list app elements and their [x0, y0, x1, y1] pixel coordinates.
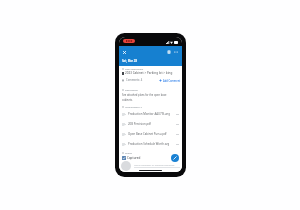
button[interactable]: More options [172, 48, 180, 56]
staticText: Add Comment [163, 79, 181, 82]
button[interactable]: Account [165, 48, 173, 56]
staticText: 2023 Cabinet > Parking lot > bing [125, 71, 173, 75]
button[interactable]: Captured [122, 156, 182, 160]
staticText: Add a comment or mention someone [134, 164, 175, 167]
staticText: Status [125, 151, 133, 154]
button[interactable]: Close [120, 48, 128, 56]
button[interactable]: Add a comment or mention someone [121, 161, 180, 171]
staticText: Description [125, 88, 138, 91]
button[interactable]: Production Monitor AAU79Lung [122, 109, 179, 119]
button[interactable]: Comments: 4 [122, 78, 181, 82]
staticText: Production Schedule Worth.svg [128, 142, 170, 146]
button[interactable]: Production Schedule Worth.svg [122, 139, 179, 149]
button[interactable]: Open Base Cabinet Pursu.pdf [122, 129, 179, 139]
staticText: Production Monitor AAU79Lung [128, 112, 170, 116]
button[interactable]: Edit [171, 154, 179, 162]
staticText: Open Base Cabinet Pursu.pdf [128, 132, 167, 136]
staticText: Sat, Mar 28 [122, 59, 137, 63]
staticText: 20B Precision.pdf [128, 122, 151, 126]
button[interactable]: 20B Precision.pdf [122, 119, 179, 129]
staticText: Captured [127, 156, 141, 160]
staticText: See attached plans for the open base cab… [122, 93, 167, 102]
staticText: Comments: 4 [126, 78, 143, 82]
staticText: Attachments: 4 [125, 105, 142, 108]
button[interactable]: 2023 Cabinet > Parking lot > bing [122, 71, 179, 75]
staticText: Task submission [125, 67, 144, 70]
